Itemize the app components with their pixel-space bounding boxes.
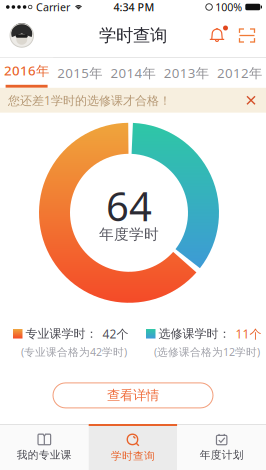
staticText: 学时查询 — [111, 449, 155, 462]
staticText: 100% — [215, 0, 242, 14]
button[interactable]: Notifications — [206, 25, 228, 45]
staticText: 64 — [106, 179, 152, 232]
staticText: Carrier — [36, 0, 70, 14]
staticText: 年度学时 — [99, 225, 159, 243]
staticText: (选修课合格为12学时) — [154, 345, 260, 359]
button[interactable]: 2013年 — [160, 58, 213, 88]
staticText: (专业课合格为42学时) — [21, 345, 127, 359]
staticText: 42个 — [102, 326, 128, 342]
staticText: 4:34 PM — [113, 0, 154, 14]
staticText: 我的专业课 — [17, 448, 72, 461]
staticText: 您还差1学时的选修课才合格！ — [8, 92, 171, 108]
button[interactable]: 2015年 — [53, 58, 106, 88]
staticText: 2015年 — [57, 64, 102, 82]
button[interactable]: Dismiss — [241, 88, 261, 113]
button[interactable]: 我的专业课 — [0, 424, 89, 470]
staticText: 专业课学时： — [25, 326, 97, 341]
staticText: 学时查询 — [99, 25, 167, 46]
staticText: 年度计划 — [200, 448, 244, 461]
button[interactable]: 年度计划 — [177, 424, 266, 470]
staticText: 11个 — [235, 326, 261, 342]
staticText: 2012年 — [217, 64, 262, 82]
button[interactable]: 2012年 — [213, 58, 266, 88]
staticText: 2016年 — [4, 62, 49, 79]
staticText: 选修课学时： — [158, 326, 230, 341]
button[interactable]: Scan — [236, 25, 258, 45]
staticText: 查看详情 — [107, 387, 159, 404]
button[interactable]: Profile — [10, 24, 33, 47]
staticText: 2014年 — [110, 64, 155, 82]
button[interactable]: 学时查询 — [89, 424, 177, 470]
button[interactable]: 2016年 — [0, 58, 53, 88]
button[interactable]: 查看详情 — [53, 383, 213, 408]
button[interactable]: 2014年 — [106, 58, 160, 88]
staticText: 2013年 — [164, 64, 209, 82]
